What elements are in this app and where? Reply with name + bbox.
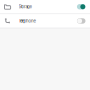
button[interactable]: Storage bbox=[0, 0, 90, 13]
staticText: Storage bbox=[19, 4, 32, 9]
button[interactable]: Telephone bbox=[0, 14, 90, 28]
staticText: Telephone bbox=[19, 18, 36, 24]
